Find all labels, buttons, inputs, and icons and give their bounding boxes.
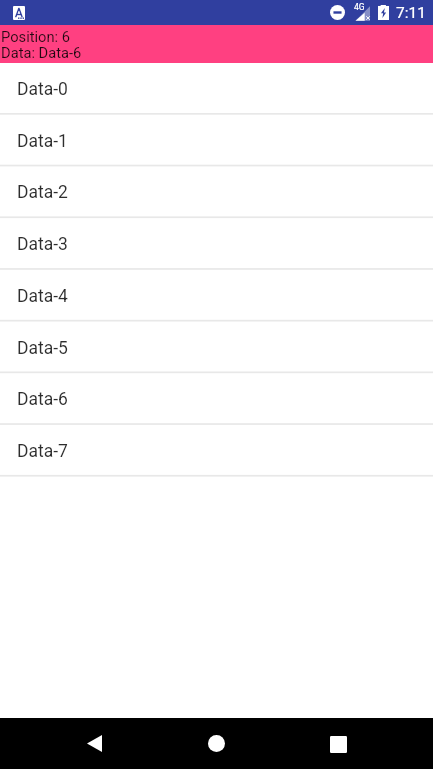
staticText: Data-2 bbox=[17, 182, 68, 203]
button[interactable]: Data-2 bbox=[0, 166, 433, 218]
staticText: Data-0 bbox=[17, 79, 68, 100]
button[interactable]: Recent apps bbox=[310, 718, 368, 769]
button[interactable]: Data-3 bbox=[0, 218, 433, 270]
button[interactable]: Data-4 bbox=[0, 270, 433, 322]
button[interactable]: Data-7 bbox=[0, 425, 433, 477]
staticText: Data: Data-6 bbox=[1, 44, 82, 61]
staticText: 4G bbox=[354, 2, 365, 12]
staticText: Data-6 bbox=[17, 389, 68, 410]
button[interactable]: Data-6 bbox=[0, 373, 433, 425]
staticText: Data-5 bbox=[17, 338, 68, 359]
staticText: Data-1 bbox=[17, 131, 68, 152]
staticText: 7:11 bbox=[396, 4, 426, 22]
button[interactable]: Home bbox=[188, 718, 246, 769]
staticText: Data-4 bbox=[17, 286, 68, 307]
button[interactable]: Data-5 bbox=[0, 322, 433, 374]
staticText: Data-7 bbox=[17, 441, 68, 462]
button[interactable]: Data-0 bbox=[0, 63, 433, 115]
staticText: Position: 6 bbox=[1, 28, 71, 45]
staticText: Data-3 bbox=[17, 234, 68, 255]
button[interactable]: Back bbox=[66, 718, 124, 769]
staticText: A bbox=[15, 6, 23, 20]
button[interactable]: Data-1 bbox=[0, 115, 433, 167]
